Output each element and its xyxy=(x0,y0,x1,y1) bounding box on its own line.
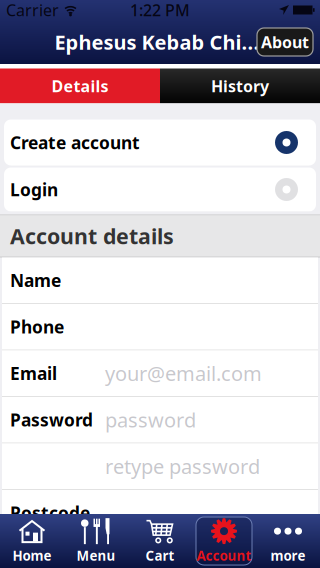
staticText: Carrier xyxy=(6,0,59,21)
button[interactable]: Login xyxy=(4,167,316,211)
button[interactable]: About xyxy=(257,28,313,56)
button[interactable]: Postcode field xyxy=(2,490,318,536)
staticText: History xyxy=(211,75,269,97)
staticText: more xyxy=(270,547,305,564)
staticText: Details xyxy=(51,75,108,97)
button[interactable]: Phone field xyxy=(2,304,318,350)
staticText: your@email.com xyxy=(105,360,262,387)
staticText: Menu xyxy=(76,547,115,564)
staticText: Account details xyxy=(10,222,174,250)
button[interactable]: Email field xyxy=(2,350,318,397)
staticText: Name xyxy=(10,269,61,292)
staticText: retype password xyxy=(105,453,260,480)
staticText: Postcode xyxy=(10,501,90,524)
staticText: Account xyxy=(196,547,251,564)
button[interactable]: Password field xyxy=(2,397,318,443)
staticText: Cart xyxy=(145,547,174,564)
button[interactable]: more xyxy=(256,514,320,568)
staticText: Create account xyxy=(10,131,140,154)
staticText: Email xyxy=(10,362,57,385)
button[interactable]: Name field xyxy=(2,257,318,304)
staticText: Home xyxy=(12,547,51,564)
button[interactable]: Account xyxy=(192,514,256,568)
staticText: Ephesus Kebab Chi... xyxy=(54,29,259,55)
button[interactable]: History xyxy=(160,68,320,103)
staticText: Login xyxy=(10,178,58,201)
button[interactable]: Create account xyxy=(4,119,316,165)
button[interactable]: Menu xyxy=(64,514,128,568)
button[interactable]: Details xyxy=(0,68,160,103)
staticText: Phone xyxy=(10,315,64,338)
staticText: About xyxy=(261,31,309,53)
staticText: password xyxy=(105,406,196,433)
staticText: 1:22 PM xyxy=(130,0,190,21)
button[interactable]: Retype password field xyxy=(2,443,318,490)
staticText: Password xyxy=(10,408,93,431)
button[interactable]: Cart xyxy=(128,514,192,568)
button[interactable]: Home xyxy=(0,514,64,568)
